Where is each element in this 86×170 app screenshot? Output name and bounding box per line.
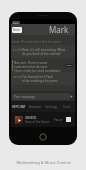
- button[interactable]: back: [12, 21, 20, 24]
- staticText: Settings: [45, 105, 58, 109]
- button[interactable]: HIPCHAT: [11, 101, 27, 112]
- button[interactable]: Browser: [27, 101, 43, 112]
- staticText: Cheer might be rated candidates.: [14, 69, 62, 72]
- button[interactable]: vanity: [11, 72, 75, 85]
- button[interactable]: Tools: [59, 101, 75, 112]
- staticText: Back: [13, 28, 21, 32]
- staticText: do you think of the criteria?: [22, 52, 61, 56]
- staticText: Pause: [54, 118, 63, 122]
- staticText: +: [70, 94, 73, 99]
- button[interactable]: Lucilla: [11, 45, 75, 58]
- staticText: Lucilla: [13, 48, 22, 52]
- staticText: Yeah, it's still interesting. What: [22, 48, 65, 52]
- staticText: Slave of the Future: [25, 120, 50, 124]
- button[interactable]: Back: [12, 27, 22, 33]
- staticText: Mark: [49, 24, 69, 35]
- staticText: 12:50: [66, 64, 72, 67]
- staticText: Multitasking & Music Control: [16, 160, 71, 165]
- button[interactable]: Your message: [12, 93, 70, 100]
- staticText: evaluation that do exist.: [14, 65, 48, 69]
- staticText: HIPCHAT: [12, 105, 26, 109]
- staticText: back: [13, 21, 19, 24]
- staticText: vibes. The pain don't feel the same: [12, 40, 61, 44]
- staticText: vanity: [13, 75, 22, 79]
- staticText: I've learned isn't Pack.: [22, 75, 54, 79]
- button[interactable]: vibes. The pain don't feel the same: [11, 35, 75, 45]
- button[interactable]: Add attachment: [69, 94, 74, 99]
- staticText: Not sure. There is some: [14, 61, 48, 65]
- staticText: GENESIS: [25, 116, 37, 120]
- staticText: Browser: [29, 105, 42, 109]
- staticText: Tools: [63, 105, 71, 109]
- button[interactable]: Not sure. There is some: [11, 58, 75, 72]
- staticText: Your message: [14, 95, 36, 99]
- button[interactable]: Settings: [43, 101, 59, 112]
- staticText: n't be existing a for years.: [22, 79, 59, 83]
